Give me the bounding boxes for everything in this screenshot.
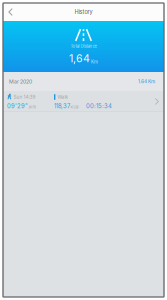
button[interactable]: Back [3, 3, 24, 21]
staticText: 1,64 [69, 52, 90, 65]
staticText: Km [91, 59, 98, 65]
staticText: Total Distance [70, 44, 96, 49]
staticText: 1.64 Km [138, 79, 155, 84]
staticText: Mar 2020 [9, 78, 32, 85]
staticText: Walk [57, 94, 68, 100]
staticText: History [75, 9, 93, 15]
button[interactable]: Sun 14:39 [3, 91, 164, 111]
staticText: Sun 14:39 [13, 94, 35, 100]
staticText: Kcal [71, 105, 79, 109]
staticText: /Km [29, 105, 37, 109]
staticText: 00:15:34 [86, 102, 112, 110]
staticText: 09'29" [7, 102, 28, 110]
staticText: 118,37 [54, 102, 70, 110]
